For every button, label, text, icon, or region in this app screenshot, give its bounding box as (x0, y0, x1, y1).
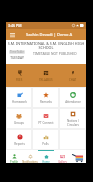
staticText: PT Connect (38, 121, 54, 125)
staticText: Notices / Circulars (67, 119, 79, 127)
staticText: Homework (12, 100, 27, 104)
staticText: Polls (42, 142, 49, 146)
button[interactable]: Notices / Circulars (60, 109, 85, 128)
button[interactable]: Gallery (54, 150, 70, 163)
button[interactable]: CHAT (59, 64, 86, 87)
staticText: Gallery (58, 160, 67, 163)
staticText: Home (42, 160, 50, 163)
button[interactable]: PT Connect (33, 109, 58, 128)
staticText: S.M. INTERNATIONAL & S.M. ENGLISH HIGH S… (6, 41, 86, 50)
staticText: 3:46 PM (8, 23, 22, 28)
button[interactable]: Groups (7, 109, 31, 128)
button[interactable]: Attendance (60, 88, 85, 107)
staticText: Remarks (40, 100, 52, 104)
button[interactable]: Open navigation menu (6, 29, 19, 40)
button[interactable]: Reports (7, 130, 31, 149)
button[interactable]: Polls (33, 130, 58, 149)
button[interactable]: Remarks (33, 88, 58, 107)
button[interactable]: Home (38, 150, 54, 163)
staticText: TIMETABLE NOT PUBLISHED (33, 51, 77, 55)
staticText: Reports (14, 142, 25, 146)
button[interactable]: TimeTable (9, 50, 25, 54)
staticText: Attendance (65, 100, 81, 104)
button[interactable]: Notifications (22, 150, 38, 163)
staticText: Groups (14, 121, 24, 125)
button[interactable]: Homework (7, 88, 31, 107)
staticText: SYLLABUS (39, 78, 53, 82)
staticText: FEES (16, 78, 23, 82)
button[interactable]: FEES (6, 64, 32, 87)
staticText: Profile (10, 160, 18, 163)
staticText: TUESDAY (9, 56, 25, 60)
button[interactable]: Profile (6, 150, 22, 163)
button[interactable]: SYLLABUS (32, 64, 59, 87)
button[interactable]: Store (70, 150, 86, 163)
staticText: CHAT (69, 78, 77, 82)
staticText: Notifications (22, 160, 38, 163)
staticText: Sachin Devadi | Demo A (26, 32, 73, 37)
staticText: TimeTable (10, 50, 24, 54)
